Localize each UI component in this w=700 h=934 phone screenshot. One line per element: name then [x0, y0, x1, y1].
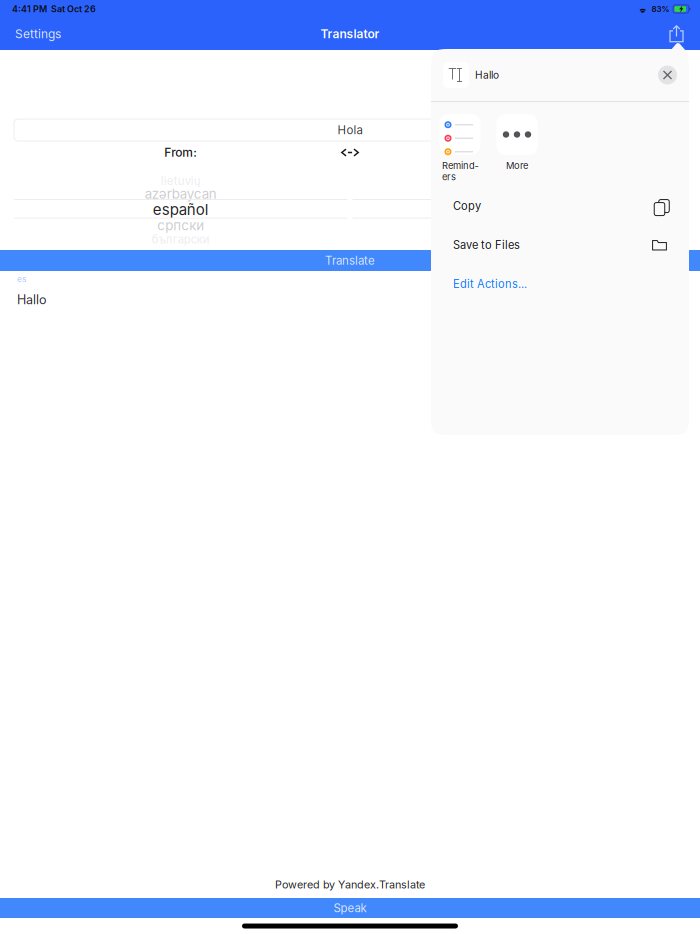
staticText: Powered by Yandex.Translate: [275, 878, 425, 891]
button[interactable]: Edit Actions...: [431, 265, 689, 304]
staticText: български: [152, 233, 210, 246]
staticText: Hallo: [17, 292, 47, 307]
button[interactable]: To:: [352, 145, 686, 160]
staticText: Hallo: [475, 69, 499, 81]
button[interactable]: [333, 145, 367, 159]
staticText: es: [17, 274, 26, 284]
staticText: lietuvių: [161, 174, 201, 188]
button[interactable]: Settings: [10, 20, 66, 48]
staticText: azərbaycan: [145, 186, 217, 202]
button[interactable]: Copy: [431, 187, 689, 226]
staticText: Edit Actions...: [453, 277, 527, 291]
staticText: Settings: [15, 27, 61, 41]
button[interactable]: Reminders: [441, 114, 479, 183]
button[interactable]: Speak: [0, 898, 700, 918]
staticText: español: [153, 200, 209, 219]
staticText: Sat Oct 26: [51, 4, 96, 14]
button[interactable]: Save to Files: [431, 226, 689, 265]
button[interactable]: More: [498, 114, 536, 171]
staticText: Reminders: [442, 160, 478, 183]
staticText: From:: [164, 145, 197, 160]
staticText: српски: [157, 217, 204, 233]
staticText: 83%: [651, 4, 669, 14]
button[interactable]: Translate: [0, 250, 700, 271]
button[interactable]: Share: [662, 19, 691, 48]
staticText: Hola: [337, 123, 362, 137]
staticText: Copy: [453, 199, 481, 213]
button[interactable]: Close: [655, 62, 680, 87]
button[interactable]: From:: [14, 145, 347, 160]
staticText: More: [506, 160, 528, 171]
staticText: Speak: [333, 901, 366, 915]
staticText: Translator: [320, 27, 379, 41]
staticText: Save to Files: [453, 238, 520, 252]
staticText: Translate: [325, 254, 375, 267]
staticText: 4:41 PM: [12, 4, 47, 14]
